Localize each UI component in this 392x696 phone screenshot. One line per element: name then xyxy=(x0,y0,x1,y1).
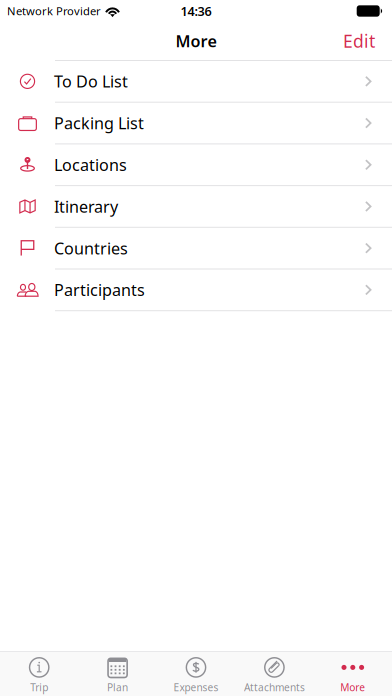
staticText: Plan xyxy=(107,680,128,694)
button[interactable]: Plan xyxy=(78,651,157,696)
button[interactable]: More xyxy=(314,651,392,696)
button[interactable]: Trip xyxy=(0,651,78,696)
button[interactable]: Packing List xyxy=(0,103,392,143)
staticText: Network Provider xyxy=(7,3,101,19)
button[interactable]: Attachments xyxy=(235,651,314,696)
staticText: Locations xyxy=(54,154,127,176)
staticText: Trip xyxy=(30,680,48,694)
staticText: Participants xyxy=(54,279,145,301)
staticText: Countries xyxy=(54,237,128,259)
staticText: More xyxy=(175,30,216,52)
staticText: Packing List xyxy=(54,112,144,134)
staticText: 14:36 xyxy=(180,2,211,20)
button[interactable]: Expenses xyxy=(157,651,235,696)
button[interactable]: Itinerary xyxy=(0,186,392,227)
button[interactable]: To Do List xyxy=(0,61,392,102)
button[interactable]: Locations xyxy=(0,144,392,185)
staticText: Edit xyxy=(343,29,375,53)
staticText: More xyxy=(340,680,365,694)
button[interactable]: Edit xyxy=(343,29,375,53)
staticText: Expenses xyxy=(173,680,218,694)
staticText: To Do List xyxy=(54,70,128,92)
button[interactable]: Countries xyxy=(0,228,392,268)
staticText: Itinerary xyxy=(54,195,118,217)
staticText: Attachments xyxy=(244,680,305,694)
button[interactable]: Participants xyxy=(0,269,392,310)
